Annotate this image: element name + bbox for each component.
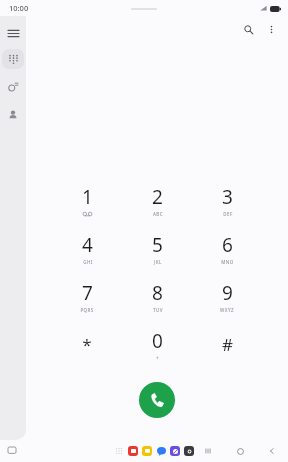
button[interactable]: Drive (170, 446, 180, 456)
staticText: TUV (153, 307, 163, 313)
staticText: ABC (153, 211, 163, 217)
staticText: 6 (222, 232, 233, 258)
button[interactable]: 7 (52, 278, 122, 314)
staticText: 4 (82, 232, 93, 258)
button[interactable]: # (192, 326, 262, 362)
staticText: + (156, 355, 159, 361)
staticText: 8 (152, 280, 163, 306)
button[interactable]: 6 (192, 230, 262, 266)
button[interactable]: All apps (114, 446, 124, 456)
staticText: 9 (222, 280, 233, 306)
button[interactable]: Keypad (2, 49, 24, 69)
button[interactable]: * (52, 326, 122, 362)
button[interactable]: Recent apps (202, 445, 214, 457)
button[interactable]: Camera (184, 446, 194, 456)
staticText: 3 (222, 184, 233, 210)
staticText: 5 (152, 232, 163, 258)
button[interactable]: Back (266, 445, 278, 457)
button[interactable]: Gmail (128, 446, 138, 456)
button[interactable]: 1 (52, 182, 122, 218)
button[interactable]: Messages (156, 446, 166, 456)
button[interactable]: 3 (192, 182, 262, 218)
button[interactable]: Recents (3, 77, 23, 97)
staticText: WXYZ (220, 307, 234, 313)
staticText: 7 (82, 280, 93, 306)
staticText: 2 (152, 184, 163, 210)
button[interactable]: 4 (52, 230, 122, 266)
button[interactable]: Contacts (3, 105, 23, 125)
staticText: PQRS (80, 307, 94, 313)
button[interactable]: Home (234, 445, 246, 457)
staticText: 1 (82, 184, 93, 210)
button[interactable]: Menu (2, 22, 24, 44)
button[interactable]: More options (262, 20, 280, 38)
button[interactable]: 9 (192, 278, 262, 314)
staticText: DEF (223, 211, 233, 217)
staticText: GHI (83, 259, 93, 265)
button[interactable]: 0 (122, 326, 192, 362)
staticText: JKL (154, 259, 162, 265)
button[interactable]: 5 (122, 230, 192, 266)
staticText: * (82, 333, 92, 356)
staticText: MNO (221, 259, 234, 265)
button[interactable]: Call (139, 382, 175, 418)
staticText: 10:00 (9, 3, 29, 13)
button[interactable]: Photos (142, 446, 152, 456)
button[interactable]: Messages (7, 446, 17, 456)
button[interactable]: Search (239, 20, 257, 38)
staticText: 0 (152, 328, 163, 354)
button[interactable]: 2 (122, 182, 192, 218)
button[interactable]: 8 (122, 278, 192, 314)
staticText: # (222, 333, 233, 356)
